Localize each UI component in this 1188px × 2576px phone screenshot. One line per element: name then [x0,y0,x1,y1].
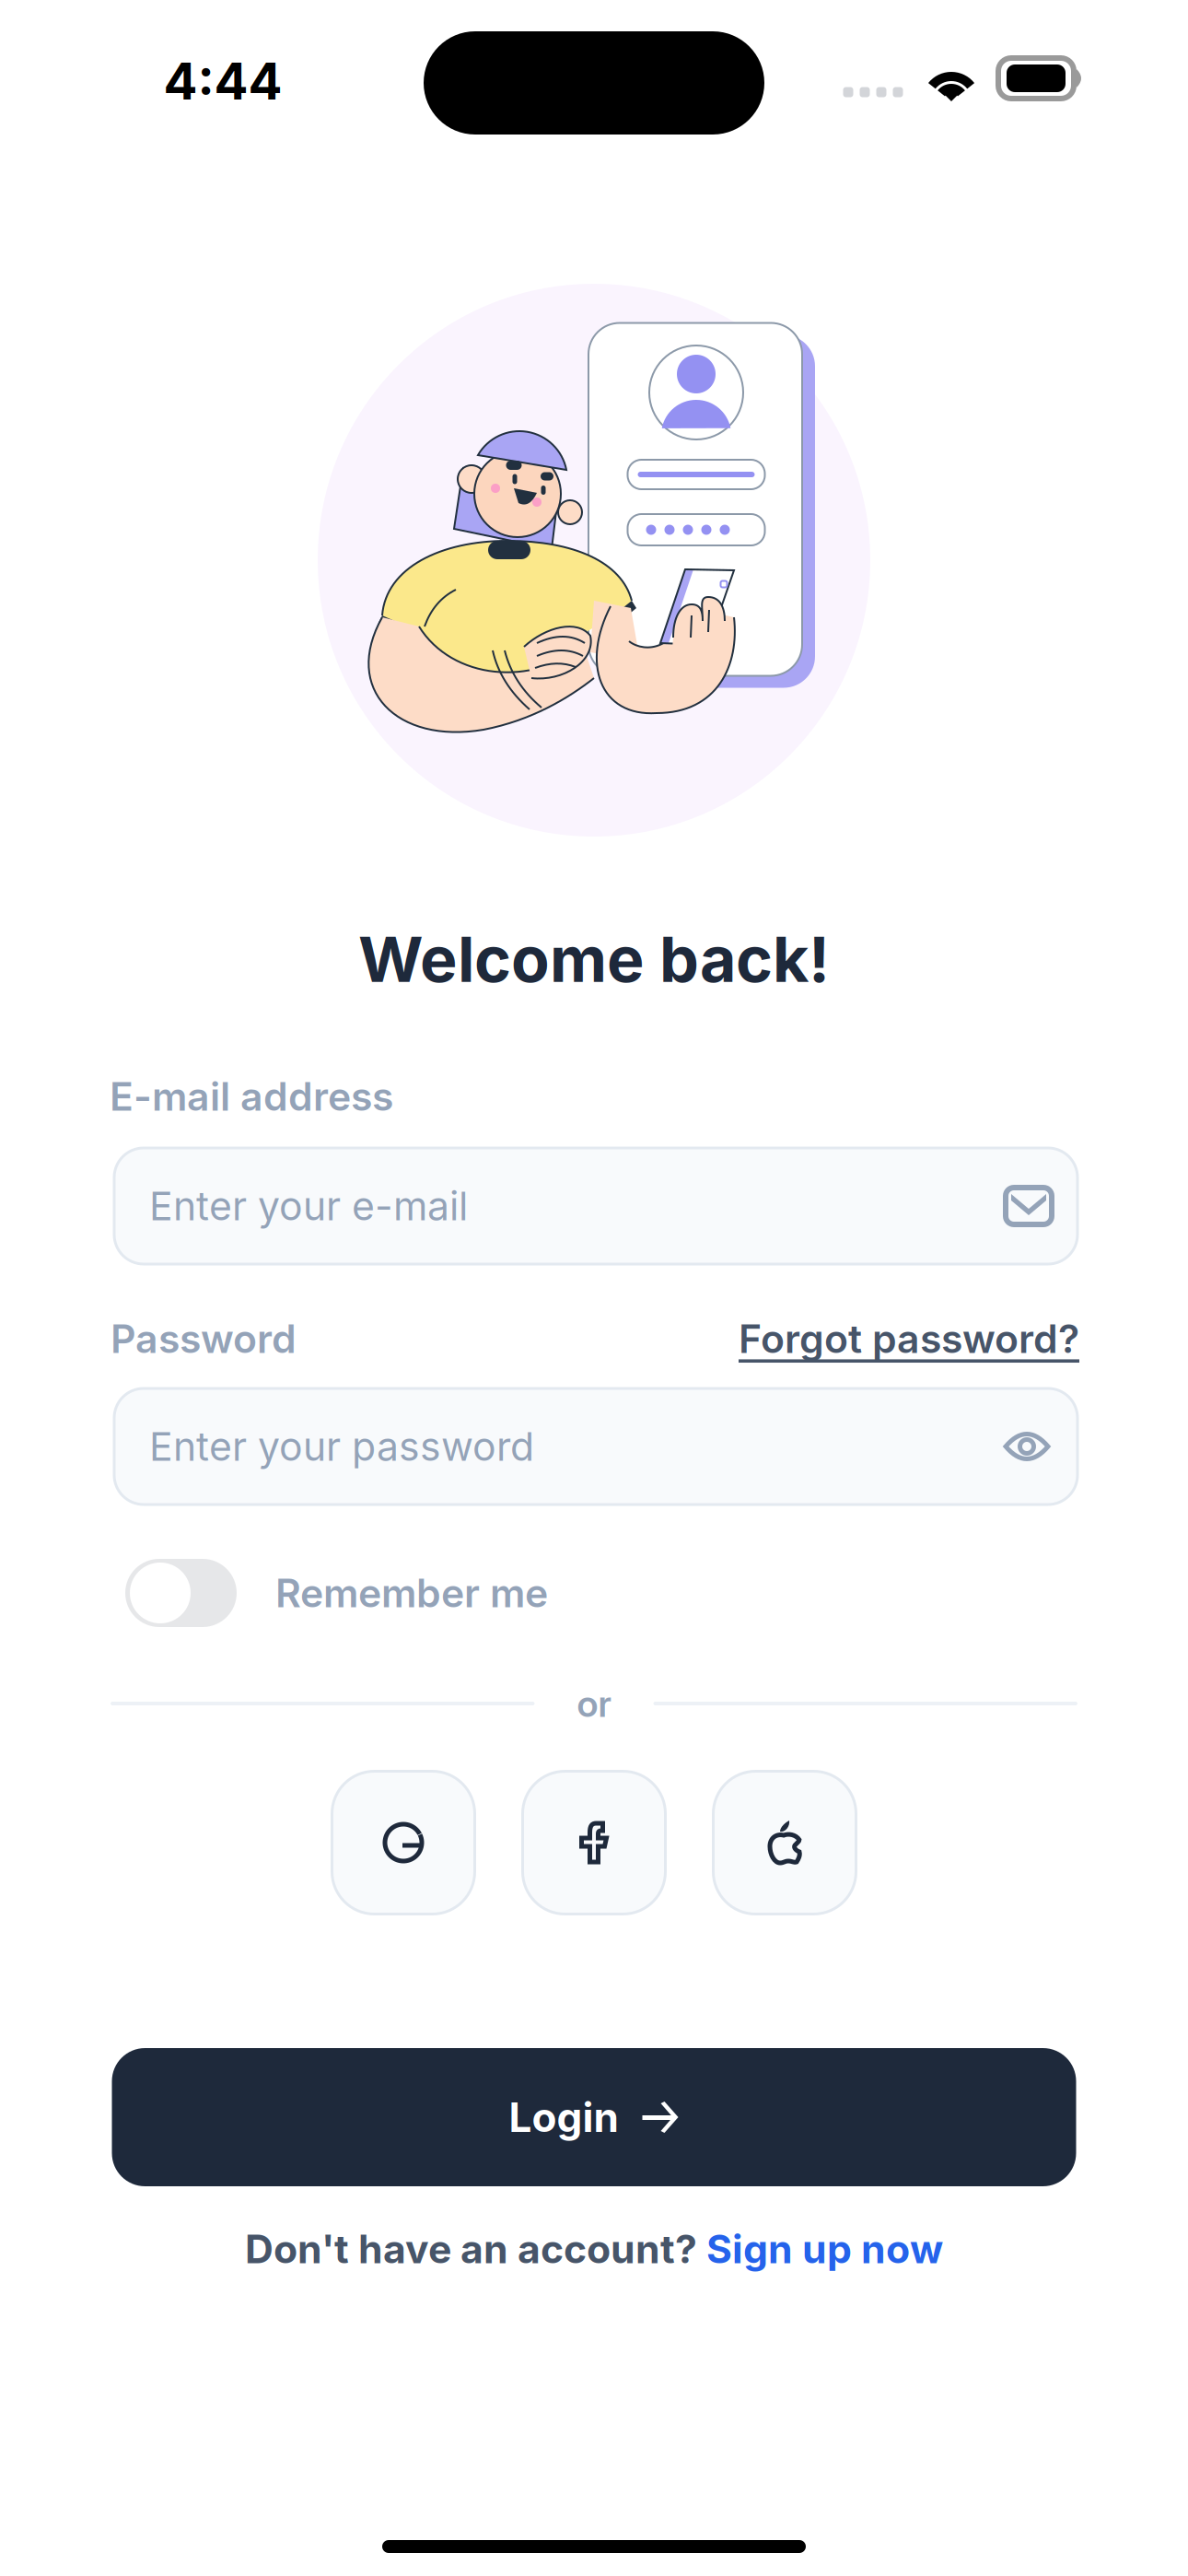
staticText: E-mail address [110,1073,393,1120]
staticText: Don't have an account? [245,2225,706,2273]
staticText: Enter your e-mail [149,1182,468,1230]
staticText: Remember me [275,1569,548,1617]
button[interactable]: Remember me [125,1554,641,1632]
button[interactable]: Sign in with Google [332,1771,475,1914]
staticText: Sign up now [706,2225,943,2273]
staticText: or [577,1681,611,1726]
button[interactable]: Sign in with Facebook [523,1771,665,1914]
staticText: Welcome back! [358,921,830,997]
staticText: Password [111,1315,297,1362]
button[interactable]: Don't have an account? [245,2216,943,2282]
staticText: Enter your password [149,1423,534,1470]
staticText: Forgot password? [739,1315,1079,1362]
staticText: 4:44 [163,51,282,111]
staticText: Login [509,2093,618,2142]
button[interactable]: Sign in with Apple [713,1771,856,1914]
button[interactable]: Login [112,2048,1076,2186]
button[interactable]: Forgot password? [739,1315,1079,1362]
